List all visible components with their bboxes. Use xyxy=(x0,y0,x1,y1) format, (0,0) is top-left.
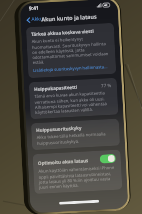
staticText: 9:41 xyxy=(29,5,39,12)
staticText: Huippukapasiteetti xyxy=(34,82,101,92)
staticText: Optimoitu akun lataus xyxy=(38,157,100,166)
other: Back xyxy=(26,17,31,23)
staticText: Akku xyxy=(31,15,43,23)
staticText: Akun käyttöiän vähentämiseksi iPhone opp… xyxy=(38,165,117,190)
staticText: Akku tukee tällä hetkellä normaalia huip… xyxy=(36,131,115,146)
staticText: Tämä arvo kuvaa akun kapasiteettia verra… xyxy=(34,90,113,115)
staticText: Tärkeä akkua koskeva viesti xyxy=(31,28,94,37)
button[interactable]: Optimoitu akun lataus xyxy=(32,150,122,194)
button[interactable]: Tärkeä akkua koskeva viesti xyxy=(26,23,116,78)
staticText: Akun kunto ja lataus xyxy=(41,13,97,22)
button[interactable]: Back xyxy=(25,14,45,24)
staticText: 77 % xyxy=(101,82,112,88)
button[interactable]: Huippusuorituskyky xyxy=(31,119,120,150)
staticText: Akun kunto ei heikentynyt huomattavasti.… xyxy=(31,35,111,65)
button[interactable]: Huippukapasiteetti xyxy=(29,78,118,119)
button[interactable]: Lisätietoja suorituskyvyn hallinnasta… xyxy=(33,64,108,74)
button[interactable]: Optimoitu akun lataus xyxy=(100,154,116,164)
staticText: Huippusuorituskyky xyxy=(36,124,82,133)
